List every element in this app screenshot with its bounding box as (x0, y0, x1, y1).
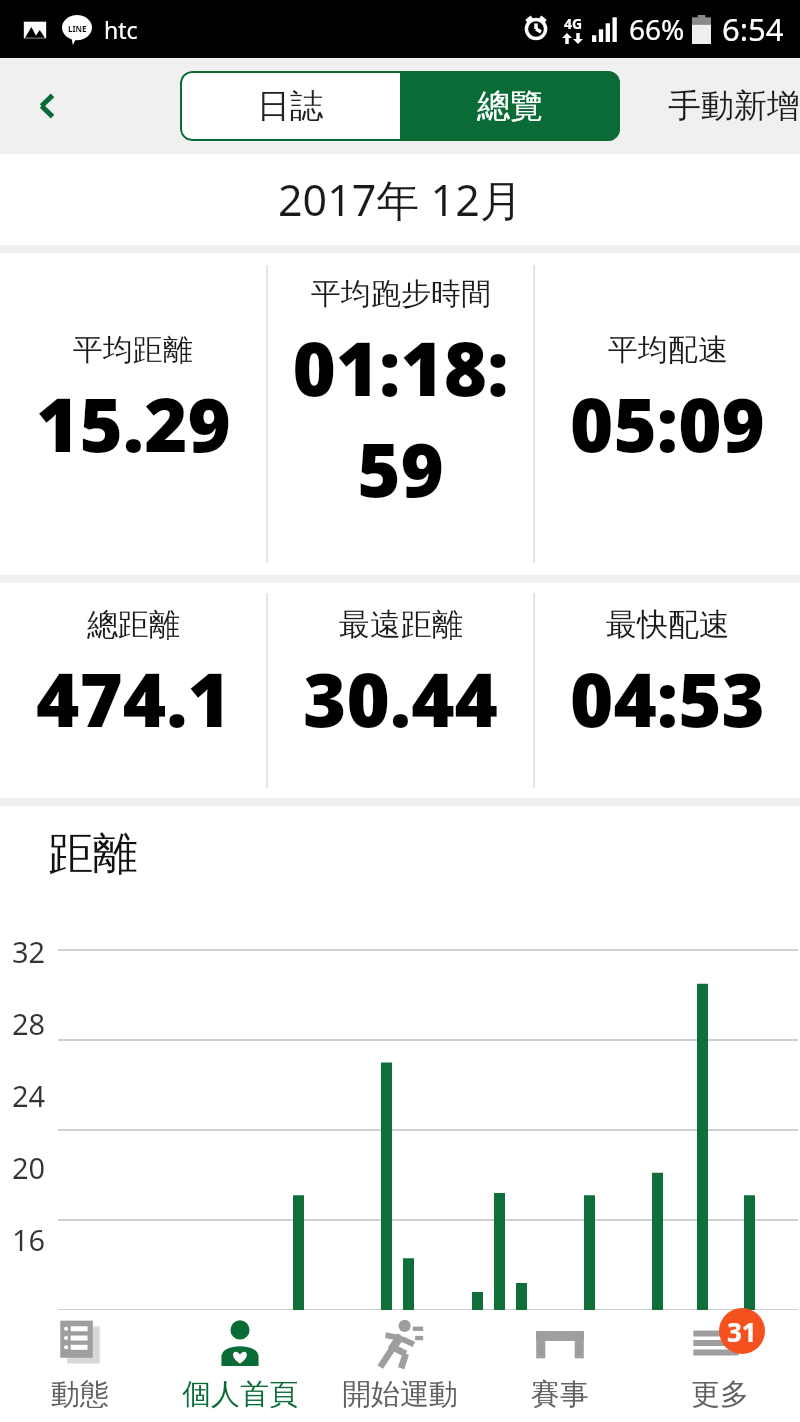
button[interactable]: 總距離 (0, 583, 266, 798)
staticText: 賽事 (531, 1376, 589, 1413)
staticText: 66% (629, 10, 685, 48)
button[interactable]: 平均距離 (0, 253, 266, 575)
staticText: 總覽 (477, 85, 543, 127)
staticText: 最遠距離 (339, 605, 463, 644)
staticText: 15.29 (36, 373, 231, 474)
staticText: 01:18:59 (271, 317, 530, 519)
staticText: 開始運動 (342, 1376, 458, 1413)
staticText: 6:54 (722, 8, 784, 50)
staticText: 28 (12, 1004, 46, 1043)
button[interactable]: 平均配速 (535, 253, 800, 575)
staticText: LINE (68, 23, 87, 34)
button[interactable]: 日誌 (180, 71, 400, 141)
button[interactable]: 最遠距離 (268, 583, 533, 798)
staticText: 平均距離 (73, 331, 193, 369)
staticText: 2017年 12月 (278, 170, 523, 229)
button[interactable]: 個人首頁 (160, 1310, 320, 1422)
staticText: 474.1 (36, 648, 231, 749)
staticText: htc (104, 14, 138, 45)
button[interactable]: 手動新增 (668, 58, 800, 154)
button[interactable]: 平均跑步時間 (268, 253, 533, 575)
staticText: 日誌 (257, 85, 323, 127)
staticText: 4G (564, 14, 583, 33)
button[interactable]: 最快配速 (535, 583, 800, 798)
staticText: 24 (12, 1076, 46, 1115)
staticText: 05:09 (570, 373, 765, 474)
staticText: 平均跑步時間 (311, 275, 491, 313)
staticText: 32 (12, 932, 46, 971)
staticText: 31 (727, 1314, 757, 1349)
button[interactable]: Back (0, 58, 95, 154)
staticText: 平均配速 (608, 331, 728, 369)
button[interactable]: 動態 (0, 1310, 160, 1422)
staticText: 20 (12, 1148, 46, 1187)
staticText: 更多 (691, 1376, 749, 1413)
staticText: 16 (12, 1220, 46, 1259)
staticText: 距離 (48, 826, 138, 883)
staticText: 30.44 (303, 648, 498, 749)
staticText: 04:53 (570, 648, 765, 749)
staticText: 個人首頁 (182, 1376, 298, 1413)
staticText: 總距離 (87, 605, 180, 644)
button[interactable]: 開始運動 (320, 1310, 480, 1422)
staticText: 手動新增 (668, 85, 800, 127)
button[interactable]: 總覽 (400, 71, 620, 141)
staticText: 最快配速 (606, 605, 730, 644)
staticText: 動態 (51, 1376, 109, 1413)
button[interactable]: 31 (640, 1310, 800, 1422)
button[interactable]: 賽事 (480, 1310, 640, 1422)
